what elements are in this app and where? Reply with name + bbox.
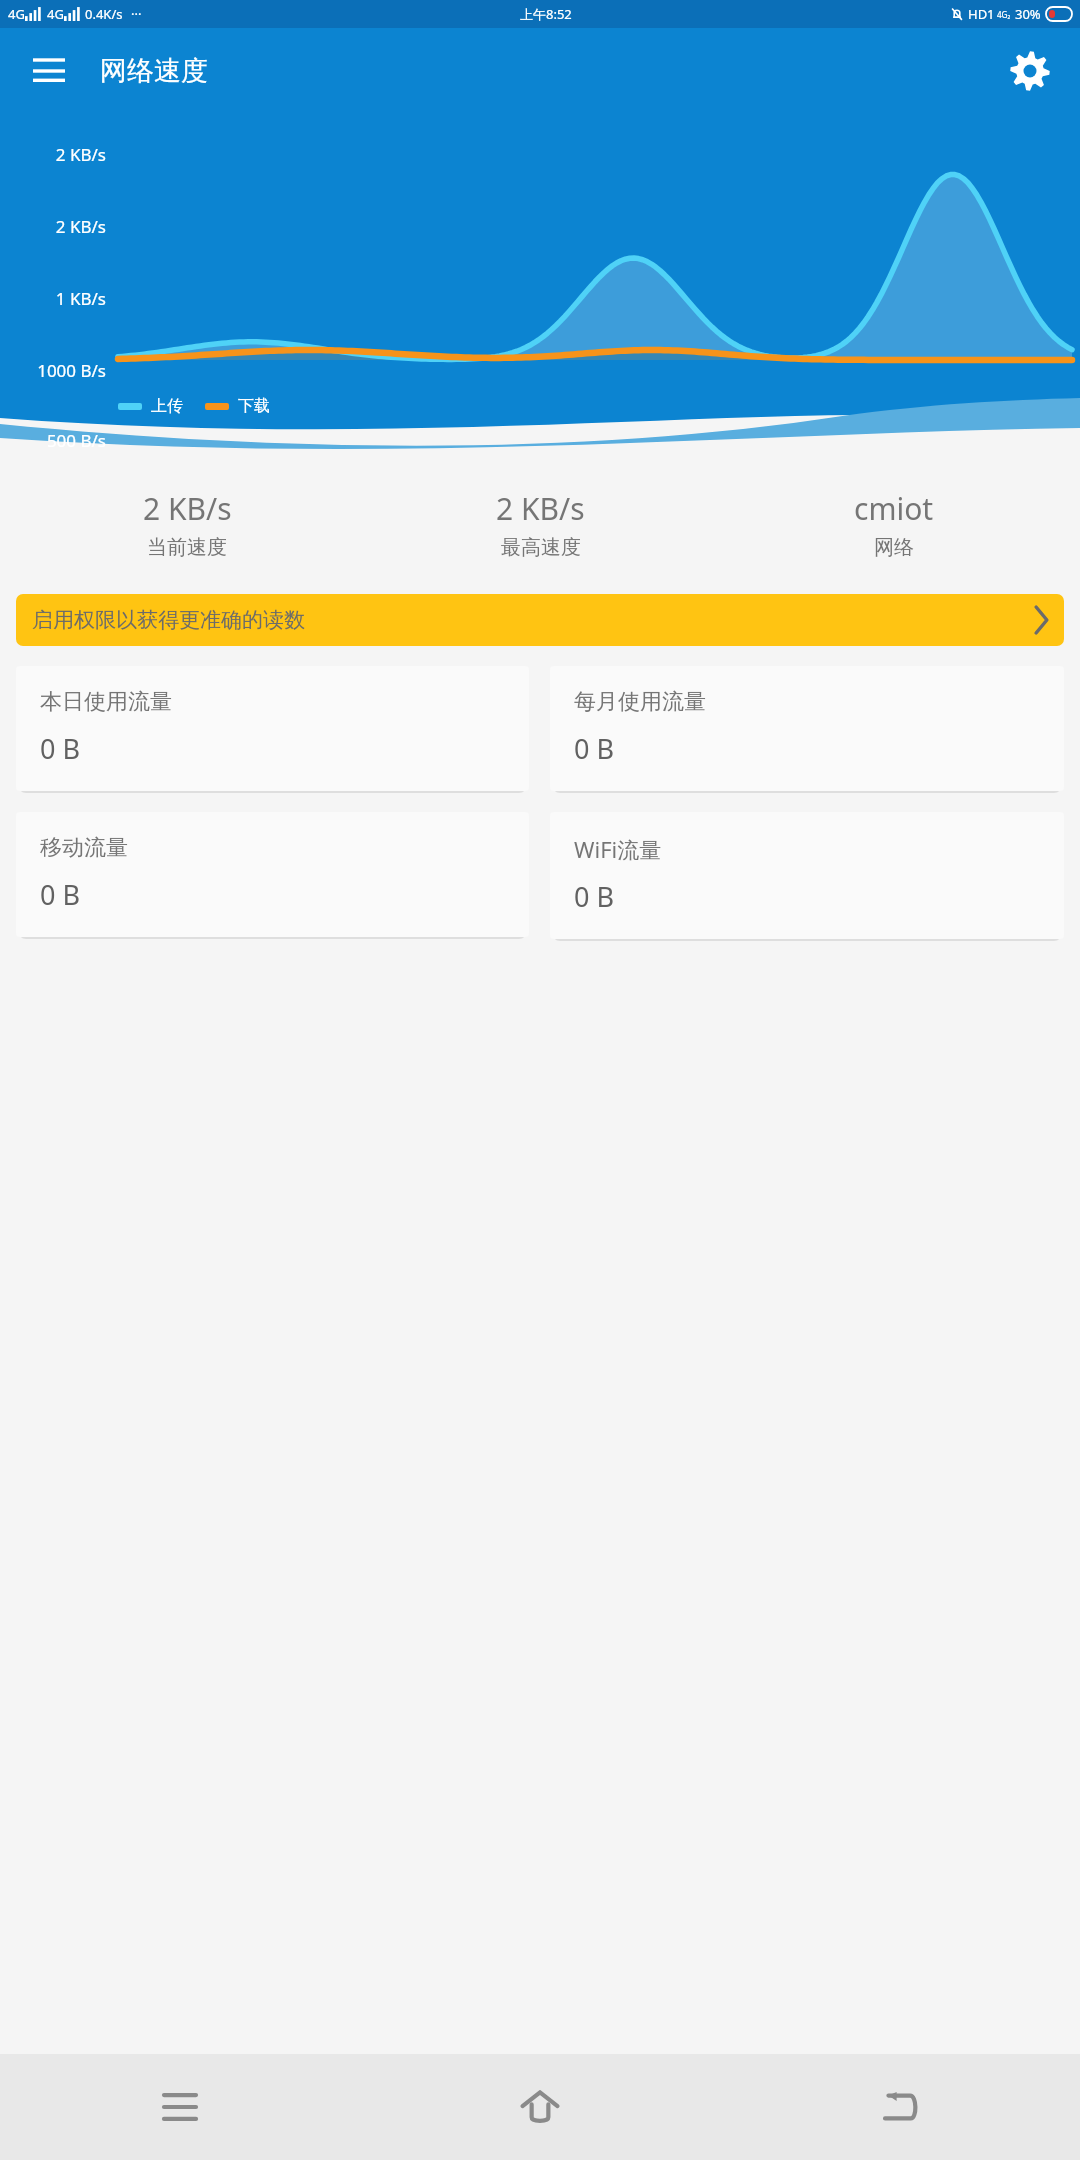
- staticText: 本日使用流量: [40, 688, 172, 716]
- staticText: 1 KB/s: [0, 287, 106, 310]
- staticText: ···: [131, 5, 142, 23]
- button[interactable]: 2 KB/s: [10, 482, 364, 566]
- button[interactable]: Recents: [0, 2054, 360, 2160]
- staticText: 0 B: [40, 876, 81, 913]
- staticText: WiFi流量: [574, 834, 662, 864]
- staticText: 2 KB/s: [143, 488, 232, 529]
- staticText: 上午8:52: [520, 5, 572, 23]
- staticText: 1000 B/s: [0, 359, 106, 382]
- staticText: 每月使用流量: [574, 688, 706, 716]
- button[interactable]: Settings: [1002, 43, 1058, 99]
- staticText: 网络速度: [100, 54, 208, 88]
- button[interactable]: Back: [720, 2054, 1080, 2160]
- staticText: 30%: [1015, 5, 1041, 23]
- staticText: 当前速度: [147, 535, 227, 560]
- staticText: 0.4K/s: [85, 5, 123, 23]
- staticText: 网络: [874, 535, 914, 560]
- staticText: 2 KB/s: [0, 215, 106, 238]
- staticText: 4G: [8, 5, 25, 23]
- staticText: 上传: [151, 396, 183, 416]
- staticText: 最高速度: [501, 535, 581, 560]
- button[interactable]: 每月使用流量: [550, 666, 1064, 791]
- button[interactable]: 2 KB/s: [364, 482, 717, 566]
- staticText: 4G₂: [997, 9, 1011, 20]
- staticText: 2 KB/s: [496, 488, 585, 529]
- staticText: 移动流量: [40, 834, 128, 862]
- staticText: 0 B: [574, 878, 615, 915]
- staticText: 启用权限以获得更准确的读数: [32, 607, 305, 633]
- staticText: 4G: [47, 5, 64, 23]
- staticText: cmiot: [854, 488, 934, 529]
- button[interactable]: 移动流量: [16, 812, 529, 937]
- button[interactable]: Menu: [22, 44, 76, 98]
- staticText: 下载: [238, 396, 270, 416]
- button[interactable]: 本日使用流量: [16, 666, 529, 791]
- button[interactable]: cmiot: [717, 482, 1070, 566]
- button[interactable]: 启用权限以获得更准确的读数: [16, 594, 1064, 646]
- button[interactable]: WiFi流量: [550, 812, 1064, 939]
- staticText: 2 KB/s: [0, 143, 106, 166]
- staticText: 0 B: [40, 730, 81, 767]
- staticText: HD1: [968, 5, 995, 23]
- staticText: 500 B/s: [0, 429, 106, 452]
- staticText: 0 B: [574, 730, 615, 767]
- button[interactable]: Home: [360, 2054, 720, 2160]
